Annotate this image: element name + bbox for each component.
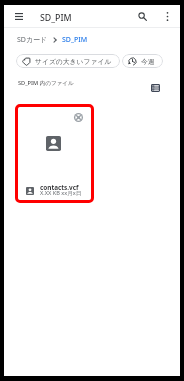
staticText: 今週 <box>141 57 155 66</box>
staticText: contacts.vcf <box>40 183 79 192</box>
button[interactable]: More options <box>157 6 178 27</box>
button[interactable]: File options <box>18 107 91 200</box>
button[interactable]: File options <box>74 113 83 122</box>
staticText: サイズの大きいファイル <box>35 57 112 66</box>
button[interactable]: サイズの大きいファイル <box>16 54 120 68</box>
staticText: SD_PIM <box>40 12 72 24</box>
button[interactable]: Search <box>132 6 153 27</box>
button[interactable]: Navigation menu <box>8 6 29 27</box>
button[interactable]: SD_PIM <box>62 35 88 45</box>
staticText: SD_PIM 内のファイル <box>18 79 74 87</box>
button[interactable]: 今週 <box>122 54 163 68</box>
staticText: X.XX KB xx月x日 <box>40 189 82 197</box>
button[interactable]: SDカード <box>17 35 48 45</box>
button[interactable]: Switch to list view <box>146 79 164 97</box>
